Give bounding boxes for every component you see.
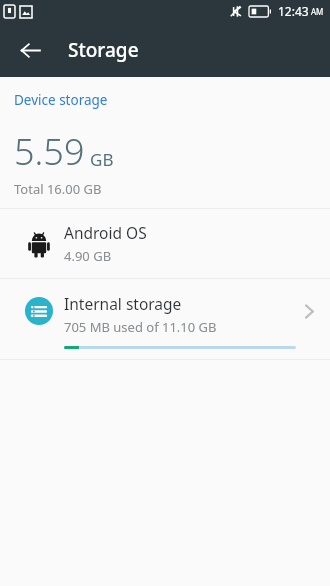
staticText: Storage [68,37,139,63]
staticText: 705 MB used of 11.10 GB [64,318,217,336]
staticText: 12:43 [278,3,309,19]
button[interactable]: Internal storage [0,279,330,359]
staticText: Android OS [64,222,147,243]
staticText: Device storage [14,91,108,109]
button[interactable]: Back [8,28,52,72]
staticText: AM [311,6,324,17]
staticText: Internal storage [64,293,182,314]
button[interactable]: Android OS [0,209,330,278]
staticText: Total 16.00 GB [14,180,102,198]
staticText: 5.59 [14,127,85,176]
staticText: 4.90 GB [64,247,112,265]
staticText: GB [90,148,114,171]
